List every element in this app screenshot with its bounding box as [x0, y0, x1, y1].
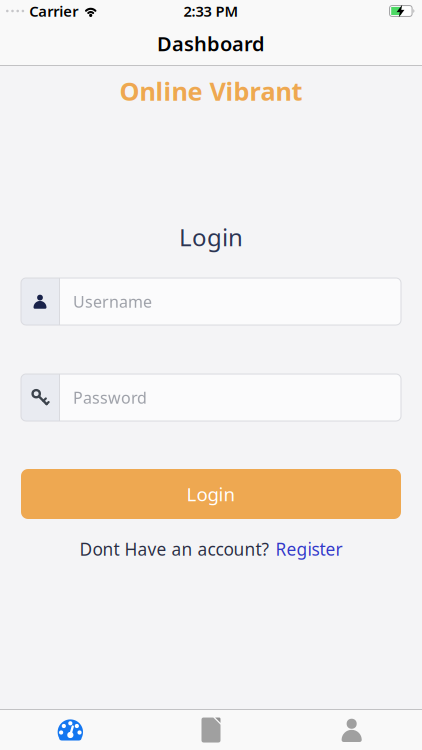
button[interactable]: Username — [21, 278, 401, 325]
button[interactable]: Dashboard — [0, 710, 141, 750]
staticText: Username — [73, 291, 152, 312]
staticText: Dont Have an account? — [79, 537, 269, 560]
staticText: Carrier — [29, 1, 78, 21]
button[interactable]: Documents — [141, 710, 281, 750]
button[interactable]: Login — [21, 469, 401, 519]
button[interactable]: Register — [275, 537, 342, 560]
staticText: Dashboard — [157, 30, 265, 57]
staticText: Login — [186, 482, 235, 506]
staticText: 2:33 PM — [183, 1, 238, 21]
staticText: Login — [179, 221, 243, 253]
button[interactable]: Password — [21, 374, 401, 421]
staticText: Register — [275, 537, 342, 560]
staticText: Password — [73, 387, 147, 408]
button[interactable]: Profile — [281, 710, 422, 750]
staticText: Online Vibrant — [119, 74, 302, 108]
